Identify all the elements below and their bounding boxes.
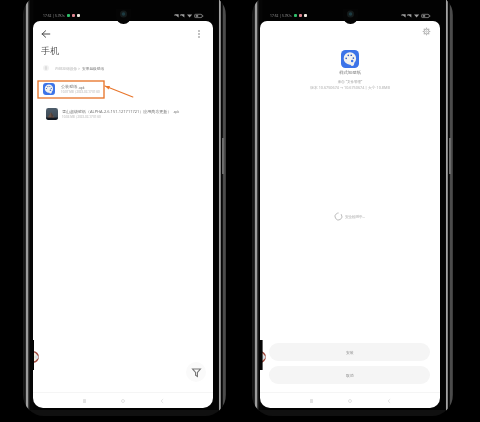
staticText: 手机 <box>41 45 59 56</box>
staticText: 公装壁纸 <box>61 84 78 89</box>
staticText: 安装 <box>346 350 354 355</box>
staticText: 17:52 | 5.7K/s <box>43 13 65 17</box>
button[interactable]: Filter <box>186 362 206 382</box>
staticText: 版本 10.6750674 → 10.6750674丨大小 10.8MB <box>260 85 440 90</box>
button[interactable]: 公装壁纸 <box>33 79 213 98</box>
button[interactable]: More options <box>193 28 205 40</box>
staticText: 10.04 MB丨2023-02-17 01:50 <box>62 115 101 119</box>
button[interactable]: Home <box>117 395 129 407</box>
button[interactable]: Back <box>156 395 168 407</box>
button[interactable]: Home <box>344 395 356 407</box>
button[interactable]: 内部存储设备 > <box>33 61 213 75</box>
staticText: 来自 “文件管理” <box>260 79 440 84</box>
staticText: 内部存储设备 > <box>55 66 82 71</box>
button[interactable]: Recents <box>305 395 317 407</box>
staticText: .apk <box>78 85 85 89</box>
button[interactable]: Settings <box>420 25 432 37</box>
button[interactable]: Back <box>40 28 52 40</box>
staticText: 样式知壁纸 <box>260 70 440 76</box>
button[interactable]: Back <box>383 395 395 407</box>
staticText: 雪山超级壁纸（ALPHA-2.6.151-121711721）应用商店更新） <box>62 109 172 114</box>
staticText: 10.07 MB丨2023-02-17 01:50 <box>61 90 100 94</box>
staticText: 安果超级壁纸 <box>82 66 105 71</box>
staticText: 取消 <box>346 373 354 378</box>
button[interactable]: 取消 <box>269 366 430 384</box>
staticText: 17:52 | 5.7K/s <box>270 13 292 17</box>
button[interactable]: Recents <box>78 395 90 407</box>
staticText: .apk <box>172 110 180 114</box>
button[interactable]: 安装 <box>269 343 430 361</box>
staticText: 安全检测中… <box>345 214 366 219</box>
button[interactable]: 雪山超级壁纸（ALPHA-2.6.151-121711721）应用商店更新） <box>33 104 213 123</box>
